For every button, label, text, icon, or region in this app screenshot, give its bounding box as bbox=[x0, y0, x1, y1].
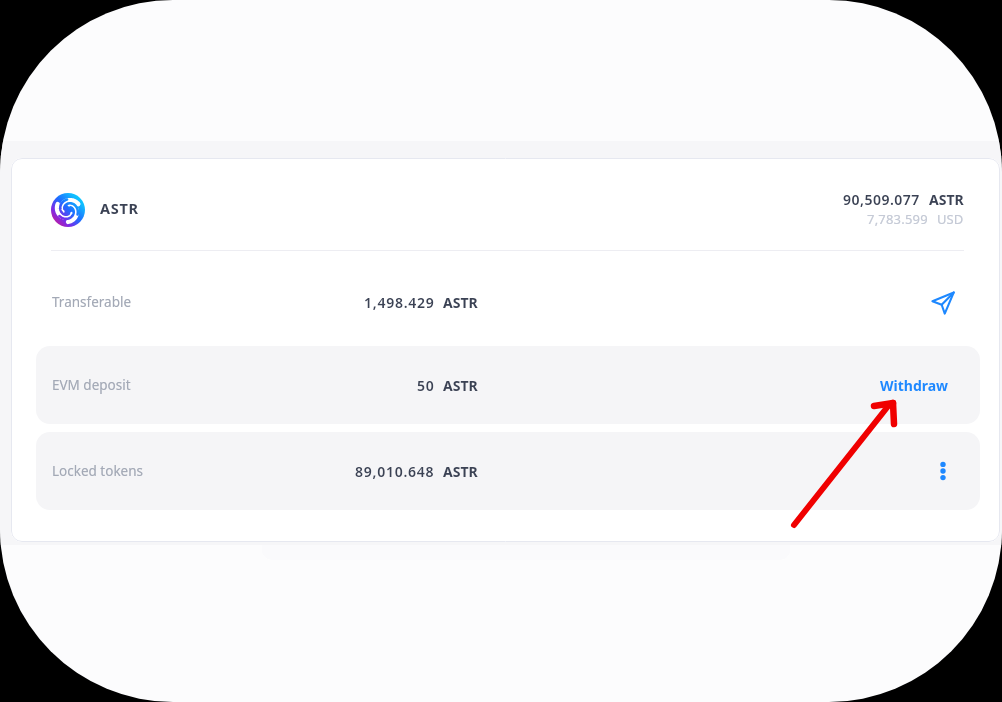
button[interactable]: Withdraw bbox=[874, 368, 955, 403]
staticText: 90,509.077 bbox=[843, 190, 920, 209]
staticText: 89,010.648 bbox=[355, 462, 435, 481]
staticText: ASTR bbox=[100, 198, 139, 218]
staticText: Withdraw bbox=[880, 376, 949, 395]
staticText: 50 bbox=[417, 376, 435, 395]
staticText: ASTR bbox=[443, 293, 478, 312]
staticText: ASTR bbox=[443, 462, 478, 481]
button[interactable]: Send bbox=[926, 285, 960, 319]
staticText: ASTR bbox=[443, 376, 478, 395]
staticText: ASTR bbox=[929, 190, 964, 209]
button[interactable]: Locked tokens bbox=[36, 432, 980, 510]
staticText: 7,783.599 bbox=[867, 210, 928, 228]
button[interactable]: Transferable bbox=[36, 263, 980, 341]
staticText: Transferable bbox=[52, 293, 132, 311]
button[interactable]: EVM deposit bbox=[36, 346, 980, 424]
staticText: USD bbox=[937, 210, 964, 228]
button[interactable]: More options bbox=[926, 454, 960, 488]
staticText: Locked tokens bbox=[52, 462, 144, 480]
staticText: 1,498.429 bbox=[364, 293, 435, 312]
staticText: EVM deposit bbox=[52, 376, 131, 394]
